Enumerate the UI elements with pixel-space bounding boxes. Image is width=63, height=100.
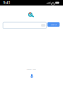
- staticText: Speak now: [26, 68, 36, 71]
- staticText: Search: [50, 23, 56, 26]
- staticText: 9:41: [3, 0, 10, 5]
- button[interactable]: [3, 22, 46, 29]
- button[interactable]: Search: [47, 22, 60, 27]
- button[interactable]: Voice search: [30, 74, 33, 78]
